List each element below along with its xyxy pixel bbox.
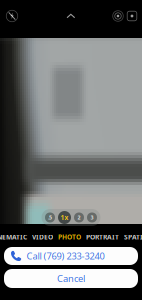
button[interactable]: CINEMATIC [0, 232, 27, 242]
button[interactable]: PORTRAIT [86, 232, 119, 242]
staticText: Call (769) 233-3240 [26, 250, 104, 262]
button[interactable]: Flash [5, 9, 19, 23]
button[interactable]: Cancel [4, 269, 138, 288]
button[interactable]: .5 [43, 209, 56, 225]
button[interactable]: VIDEO [32, 232, 53, 242]
staticText: 1x [60, 213, 68, 222]
button[interactable]: Call (769) 233-3240 [4, 247, 138, 265]
staticText: PHOTO [58, 233, 81, 241]
staticText: VIDEO [32, 233, 53, 241]
staticText: PORTRAIT [86, 233, 119, 241]
staticText: CINEMATIC [0, 233, 27, 241]
button[interactable]: Photographic Styles [125, 9, 139, 23]
button[interactable]: PHOTO [58, 232, 81, 242]
staticText: .5 [48, 214, 52, 221]
button[interactable]: SPATIAL [124, 232, 142, 242]
button[interactable]: Live Photo [111, 9, 125, 23]
button[interactable]: 2 [72, 209, 85, 225]
staticText: Cancel [57, 272, 85, 285]
staticText: 3 [90, 214, 93, 221]
staticText: 2 [77, 214, 80, 221]
button[interactable]: 1x [56, 209, 72, 225]
button[interactable]: More camera controls [64, 9, 78, 23]
staticText: SPATIAL [124, 233, 142, 241]
button[interactable]: 3 [85, 209, 98, 225]
